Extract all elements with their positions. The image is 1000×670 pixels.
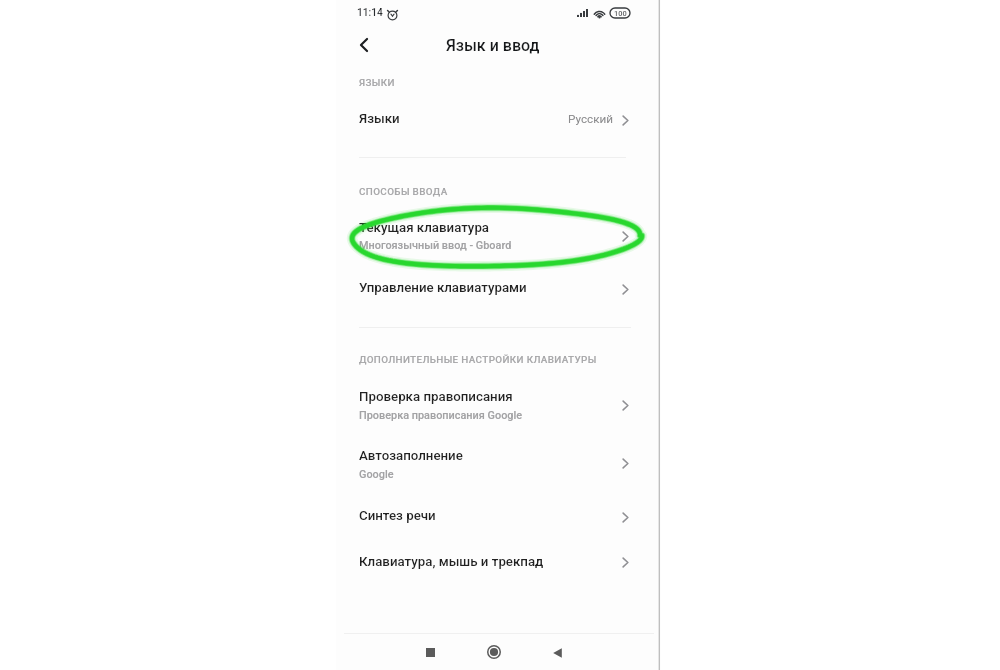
- staticText: 100: [614, 9, 627, 18]
- button[interactable]: Главный экран: [477, 635, 511, 669]
- staticText: Язык и ввод: [446, 36, 540, 55]
- staticText: ДОПОЛНИТЕЛЬНЫЕ НАСТРОЙКИ КЛАВИАТУРЫ: [359, 354, 597, 366]
- staticText: Клавиатура, мышь и трекпад: [359, 554, 544, 570]
- staticText: 11:14: [357, 7, 383, 19]
- staticText: Синтез речи: [359, 508, 436, 524]
- button[interactable]: Клавиатура, мышь и трекпад: [336, 539, 659, 585]
- staticText: Проверка правописания: [359, 389, 513, 405]
- staticText: Языки: [359, 111, 400, 127]
- staticText: СПОСОБЫ ВВОДА: [359, 186, 448, 198]
- button[interactable]: Последние приложения: [413, 635, 447, 669]
- staticText: Многоязычный ввод - Gboard: [359, 239, 512, 252]
- staticText: Проверка правописания Google: [359, 409, 523, 422]
- staticText: Автозаполнение: [359, 448, 463, 464]
- button[interactable]: Языки: [336, 97, 659, 143]
- staticText: Google: [359, 468, 394, 481]
- staticText: Текущая клавиатура: [359, 220, 490, 236]
- staticText: Управление клавиатурами: [359, 280, 527, 296]
- button[interactable]: Назад: [350, 31, 378, 59]
- button[interactable]: Управление клавиатурами: [336, 266, 659, 312]
- staticText: Русский: [568, 112, 613, 126]
- button[interactable]: Автозаполнение: [336, 436, 659, 490]
- button[interactable]: Назад: [540, 636, 574, 670]
- button[interactable]: Синтез речи: [336, 494, 659, 540]
- button[interactable]: Текущая клавиатура: [336, 208, 659, 262]
- button[interactable]: Проверка правописания: [336, 377, 659, 431]
- staticText: ЯЗЫКИ: [359, 77, 395, 89]
